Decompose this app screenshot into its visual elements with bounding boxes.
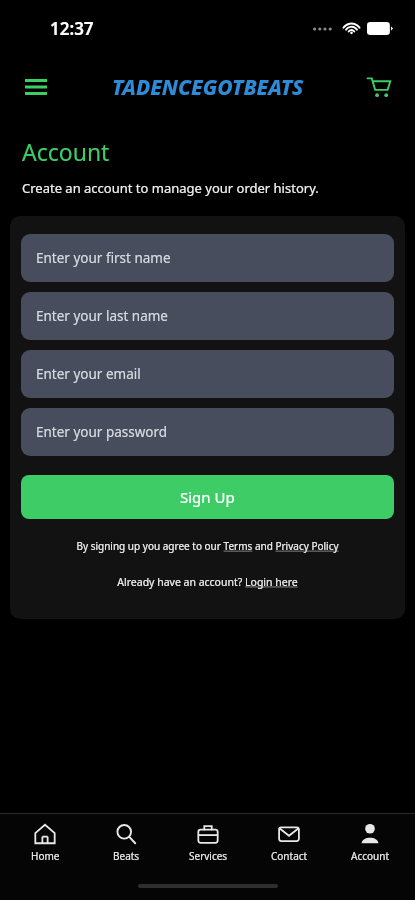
staticText: Account — [351, 849, 390, 863]
button[interactable]: By signing up you agree to our Terms and… — [76, 539, 339, 553]
button[interactable]: Contact — [253, 819, 325, 867]
staticText: Create an account to manage your order h… — [22, 179, 319, 197]
button[interactable]: Enter your email — [21, 350, 394, 398]
staticText: Services — [189, 849, 228, 863]
button[interactable]: Enter your first name — [21, 234, 394, 282]
staticText: Home — [31, 849, 60, 863]
button[interactable]: Sign Up — [21, 475, 394, 519]
button[interactable]: Enter your password — [21, 408, 394, 456]
staticText: Account — [22, 136, 110, 167]
button[interactable]: Account — [334, 819, 406, 867]
button[interactable]: Menu — [14, 65, 58, 109]
button[interactable]: Services — [172, 819, 244, 867]
staticText: Sign Up — [180, 487, 235, 507]
staticText: Enter your email — [36, 365, 141, 383]
button[interactable]: Already have an account? Login here — [117, 575, 298, 589]
staticText: Beats — [113, 849, 140, 863]
button[interactable]: Enter your last name — [21, 292, 394, 340]
staticText: Enter your first name — [36, 249, 171, 267]
staticText: Enter your last name — [36, 307, 168, 325]
button[interactable]: Beats — [90, 819, 162, 867]
staticText: Enter your password — [36, 423, 168, 441]
button[interactable]: Home — [9, 819, 81, 867]
button[interactable]: Cart — [357, 65, 401, 109]
staticText: TADENCEGOTBEATS — [112, 73, 304, 102]
staticText: Contact — [271, 849, 308, 863]
staticText: 12:37 — [50, 17, 94, 40]
